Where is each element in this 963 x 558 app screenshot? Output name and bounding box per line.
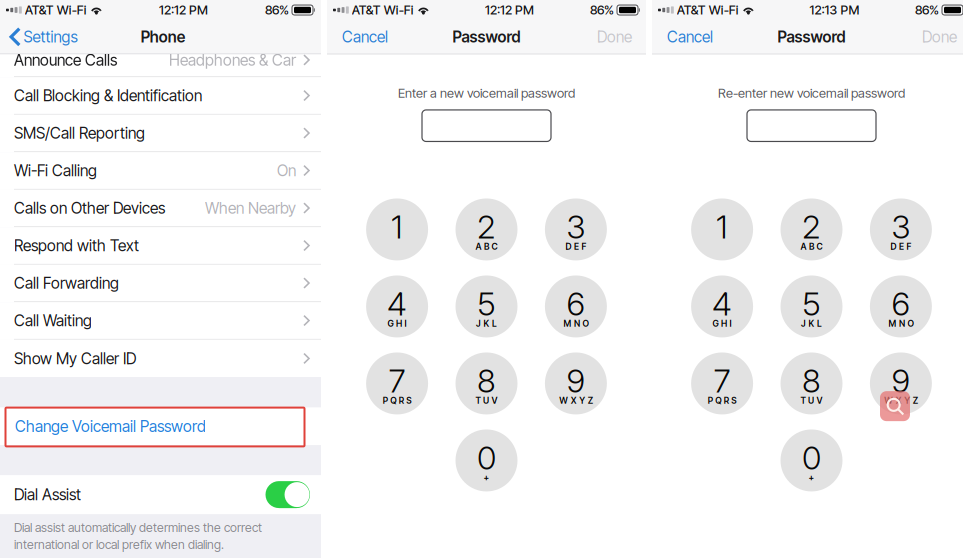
staticText: 6 bbox=[891, 285, 910, 323]
staticText: AT&T Wi-Fi bbox=[352, 2, 414, 18]
button[interactable]: 3 bbox=[545, 198, 607, 260]
button[interactable]: 6 bbox=[870, 275, 932, 337]
staticText: 86% bbox=[915, 2, 939, 18]
button[interactable]: Settings bbox=[0, 20, 78, 54]
staticText: Password bbox=[452, 27, 520, 46]
button[interactable]: Call Blocking & Identification bbox=[0, 77, 321, 115]
staticText: PQRS bbox=[383, 395, 411, 406]
button[interactable]: Respond with Text bbox=[0, 227, 321, 265]
staticText: 6 bbox=[566, 285, 585, 323]
button[interactable]: 8 bbox=[455, 352, 517, 414]
button[interactable]: Change Voicemail Password bbox=[0, 407, 321, 445]
staticText: 86% bbox=[265, 2, 289, 18]
button[interactable]: 9 bbox=[870, 352, 932, 414]
button[interactable]: 3 bbox=[870, 198, 932, 260]
button[interactable]: 0 bbox=[780, 429, 842, 491]
button[interactable]: Dial Assist bbox=[265, 481, 310, 508]
staticText: Wi-Fi Calling bbox=[14, 161, 97, 180]
button[interactable]: 5 bbox=[780, 275, 842, 337]
staticText: SMS/Call Reporting bbox=[14, 124, 145, 142]
staticText: TUV bbox=[475, 395, 497, 406]
button[interactable]: 9 bbox=[545, 352, 607, 414]
staticText: Call Waiting bbox=[14, 311, 92, 330]
staticText: 4 bbox=[712, 285, 732, 323]
button[interactable]: Announce Calls bbox=[0, 54, 321, 77]
staticText: Change Voicemail Password bbox=[15, 417, 206, 436]
staticText: ABC bbox=[800, 241, 822, 252]
staticText: WXYZ bbox=[559, 395, 593, 406]
staticText: GHI bbox=[713, 318, 732, 329]
staticText: Re-enter new voicemail password bbox=[718, 85, 905, 101]
button[interactable]: Wi-Fi Calling bbox=[0, 152, 321, 190]
staticText: Cancel bbox=[667, 27, 713, 46]
staticText: DEF bbox=[565, 241, 586, 252]
button[interactable]: 7 bbox=[691, 352, 753, 414]
button[interactable]: 4 bbox=[366, 275, 428, 337]
staticText: Dial Assist bbox=[14, 485, 81, 504]
staticText: TUV bbox=[800, 395, 822, 406]
button[interactable]: 0 bbox=[455, 429, 517, 491]
staticText: Done bbox=[597, 27, 632, 46]
staticText: Done bbox=[922, 27, 957, 46]
staticText: 1 bbox=[391, 208, 403, 246]
staticText: 0 bbox=[477, 439, 496, 477]
staticText: Calls on Other Devices bbox=[14, 199, 165, 217]
button[interactable]: 2 bbox=[780, 198, 842, 260]
staticText: 2 bbox=[802, 208, 821, 246]
staticText: Announce Calls bbox=[14, 50, 117, 69]
button[interactable]: 1 bbox=[691, 198, 753, 260]
staticText: GHI bbox=[388, 318, 407, 329]
staticText: WXYZ bbox=[884, 395, 918, 406]
staticText: 0 bbox=[802, 439, 821, 477]
button[interactable]: 4 bbox=[691, 275, 753, 337]
button[interactable]: Call Forwarding bbox=[0, 265, 321, 302]
staticText: 7 bbox=[714, 362, 731, 400]
staticText: Headphones & Car bbox=[169, 50, 296, 69]
staticText: Call Blocking & Identification bbox=[14, 86, 202, 105]
staticText: Call Forwarding bbox=[14, 274, 119, 292]
staticText: 12:13 PM bbox=[810, 2, 860, 18]
button[interactable]: Show My Caller ID bbox=[0, 340, 321, 377]
staticText: Cancel bbox=[342, 27, 388, 46]
staticText: Respond with Text bbox=[14, 236, 139, 255]
staticText: 5 bbox=[802, 285, 820, 323]
staticText: Show My Caller ID bbox=[14, 349, 136, 368]
button[interactable]: 6 bbox=[545, 275, 607, 337]
staticText: MNO bbox=[888, 318, 913, 329]
staticText: Enter a new voicemail password bbox=[398, 85, 575, 101]
staticText: 12:12 PM bbox=[159, 2, 208, 18]
staticText: Password bbox=[777, 27, 845, 46]
staticText: Dial assist automatically determines the… bbox=[14, 520, 262, 535]
button[interactable]: 2 bbox=[455, 198, 517, 260]
staticText: 86% bbox=[590, 2, 614, 18]
staticText: When Nearby bbox=[205, 199, 296, 217]
button[interactable]: Cancel bbox=[327, 20, 402, 54]
button[interactable]: 8 bbox=[780, 352, 842, 414]
staticText: JKL bbox=[801, 318, 822, 329]
button[interactable]: 1 bbox=[366, 198, 428, 260]
staticText: international or local prefix when diali… bbox=[14, 537, 224, 552]
staticText: MNO bbox=[563, 318, 588, 329]
staticText: 3 bbox=[891, 208, 910, 246]
staticText: 3 bbox=[566, 208, 585, 246]
staticText: DEF bbox=[890, 241, 911, 252]
button[interactable]: Done bbox=[896, 20, 963, 54]
button[interactable]: 7 bbox=[366, 352, 428, 414]
button[interactable]: Done bbox=[571, 20, 646, 54]
button[interactable]: 5 bbox=[455, 275, 517, 337]
button[interactable]: Calls on Other Devices bbox=[0, 190, 321, 227]
button[interactable]: Cancel bbox=[652, 20, 727, 54]
staticText: 8 bbox=[802, 362, 821, 400]
staticText: On bbox=[277, 161, 296, 180]
staticText: 12:12 PM bbox=[485, 2, 534, 18]
button[interactable]: Call Waiting bbox=[0, 302, 321, 340]
staticText: 7 bbox=[389, 362, 406, 400]
staticText: JKL bbox=[476, 318, 497, 329]
staticText: AT&T Wi-Fi bbox=[677, 2, 739, 18]
staticText: AT&T Wi-Fi bbox=[25, 2, 87, 18]
staticText: ABC bbox=[475, 241, 497, 252]
staticText: Settings bbox=[24, 27, 78, 46]
staticText: 4 bbox=[387, 285, 407, 323]
staticText: + bbox=[483, 472, 489, 483]
button[interactable]: SMS/Call Reporting bbox=[0, 115, 321, 152]
